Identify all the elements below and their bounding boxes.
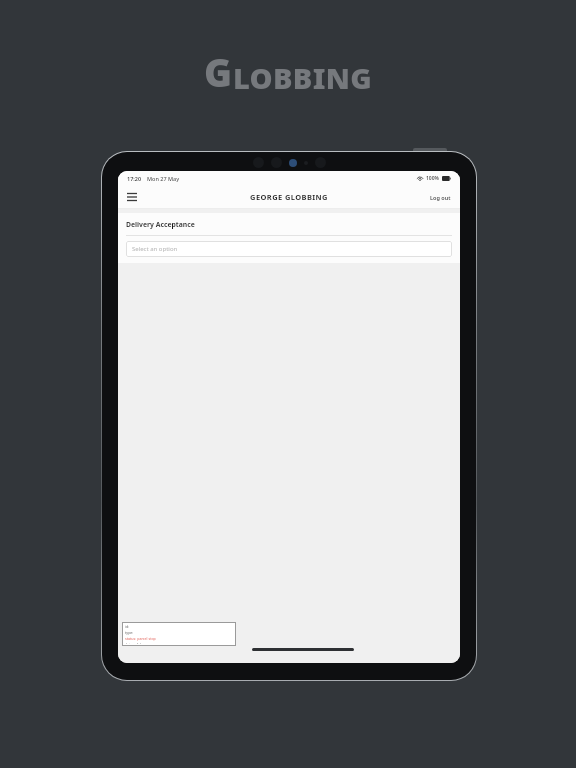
button[interactable]: Log out bbox=[427, 191, 454, 204]
staticText: status: parcel stop bbox=[125, 636, 156, 641]
staticText: Delivery Acceptance bbox=[126, 220, 195, 229]
staticText: id: bbox=[125, 624, 130, 629]
staticText: Mon 27 May bbox=[147, 175, 180, 182]
button[interactable]: Select an option bbox=[126, 241, 452, 257]
staticText: G bbox=[204, 46, 233, 98]
staticText: Log out bbox=[430, 194, 451, 201]
staticText: 17:20 bbox=[127, 175, 142, 182]
staticText: 100% bbox=[426, 175, 439, 182]
staticText: type: bbox=[125, 630, 134, 635]
staticText: driver: false bbox=[125, 642, 145, 644]
staticText: LOBBING bbox=[233, 58, 373, 97]
staticText: GEORGE GLOBBING bbox=[250, 192, 328, 202]
staticText: Select an option bbox=[132, 245, 178, 253]
button[interactable]: Open navigation menu bbox=[125, 190, 139, 204]
